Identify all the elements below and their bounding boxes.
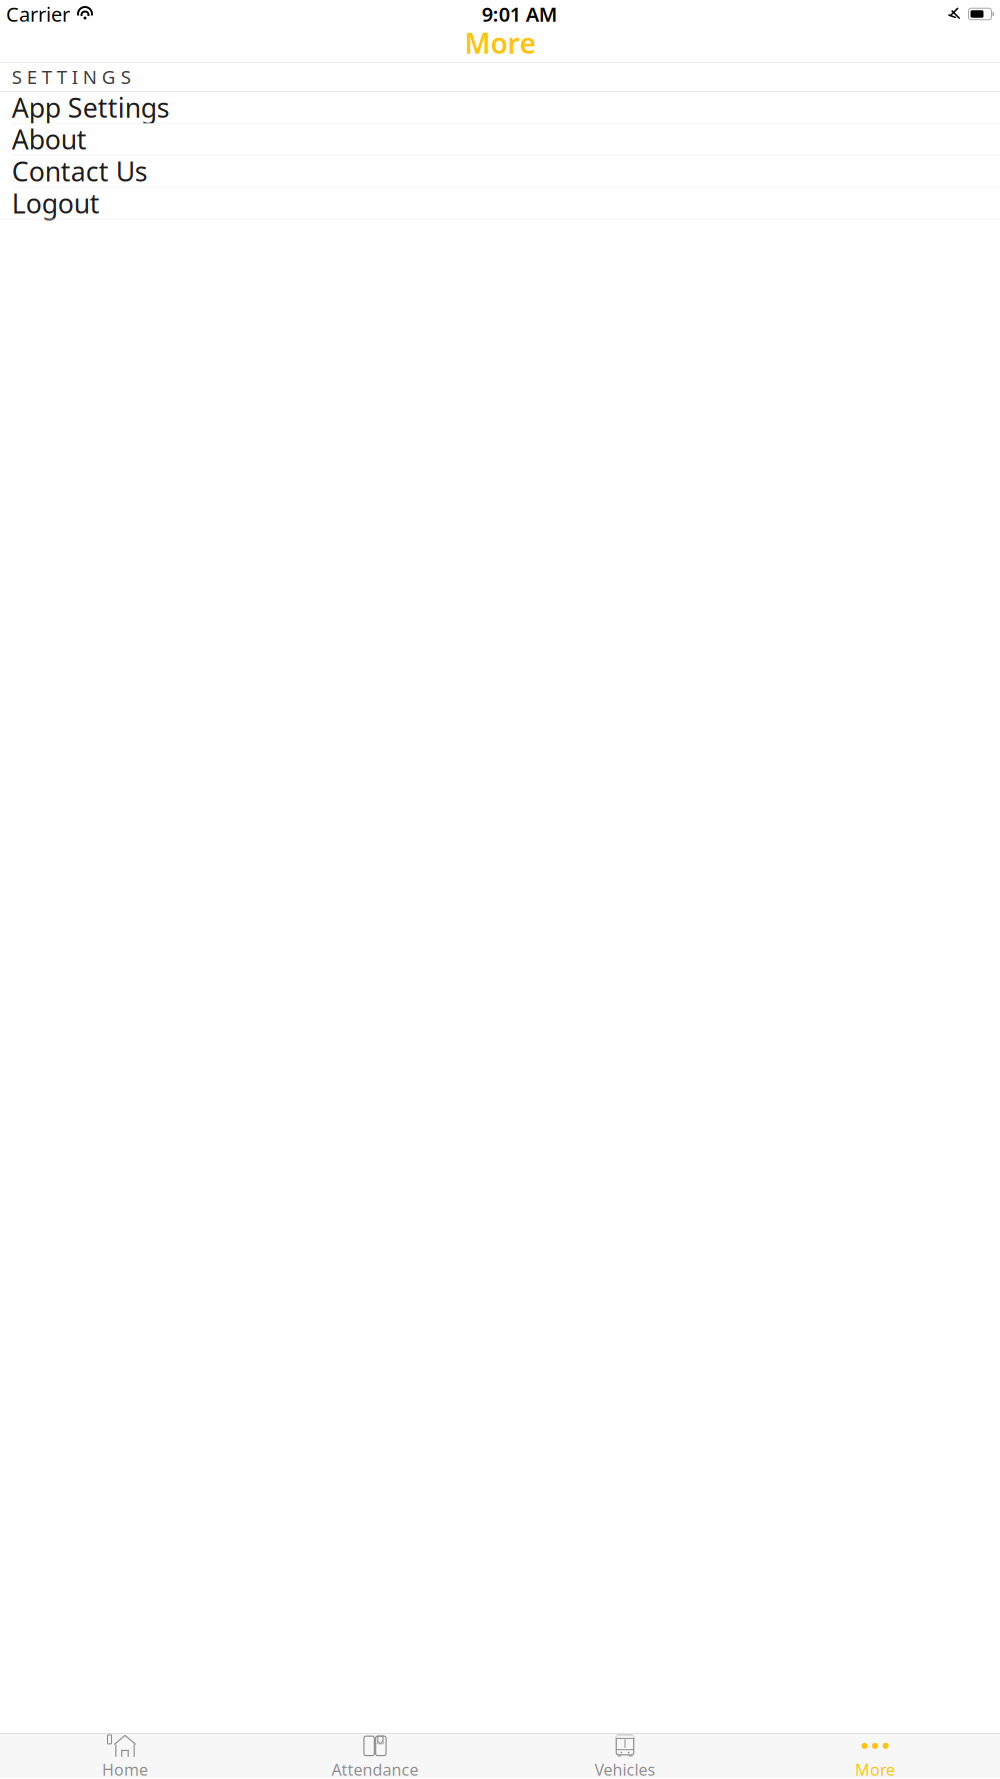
- staticText: Home: [102, 1759, 148, 1779]
- button[interactable]: About: [0, 124, 1000, 155]
- staticText: About: [12, 121, 87, 157]
- button[interactable]: App Settings: [0, 92, 1000, 123]
- button[interactable]: Vehicles: [500, 1728, 750, 1779]
- staticText: App Settings: [12, 90, 170, 125]
- button[interactable]: Attendance: [250, 1728, 500, 1779]
- button[interactable]: Contact Us: [0, 155, 1000, 187]
- button[interactable]: Home: [0, 1728, 250, 1779]
- staticText: Vehicles: [594, 1759, 655, 1779]
- staticText: Attendance: [331, 1759, 418, 1779]
- staticText: More: [855, 1759, 895, 1779]
- button[interactable]: Logout: [0, 187, 1000, 219]
- button[interactable]: More: [750, 1728, 1000, 1779]
- staticText: S E T T I N G S: [12, 64, 131, 89]
- staticText: Logout: [12, 185, 100, 221]
- staticText: 9:01 AM: [482, 1, 558, 27]
- staticText: Carrier: [6, 1, 70, 27]
- staticText: Contact Us: [12, 153, 148, 189]
- staticText: More: [464, 24, 535, 62]
